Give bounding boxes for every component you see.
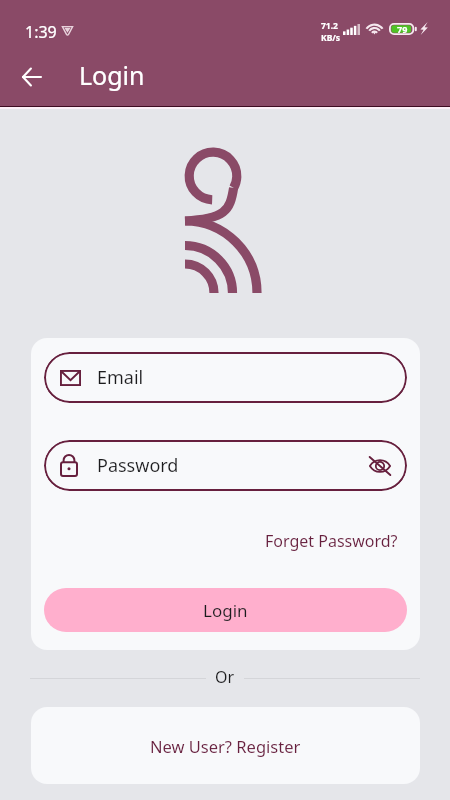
staticText: 1:39: [25, 21, 57, 43]
staticText: Email: [97, 365, 144, 390]
staticText: KB/s: [321, 32, 341, 44]
staticText: New User? Register: [150, 735, 301, 757]
staticText: 71.2: [321, 20, 338, 32]
button[interactable]: Back: [9, 55, 53, 99]
staticText: Password: [97, 453, 179, 478]
button[interactable]: Password: [44, 440, 407, 491]
button[interactable]: Login: [44, 588, 407, 632]
button[interactable]: New User? Register: [31, 707, 420, 784]
staticText: 79: [397, 23, 408, 35]
staticText: Login: [203, 599, 248, 622]
staticText: Forget Password?: [265, 530, 398, 552]
button[interactable]: Show password: [368, 454, 392, 478]
staticText: Login: [79, 58, 145, 92]
button[interactable]: Email: [44, 352, 407, 403]
button[interactable]: Forget Password?: [265, 526, 398, 556]
staticText: Or: [215, 666, 235, 688]
